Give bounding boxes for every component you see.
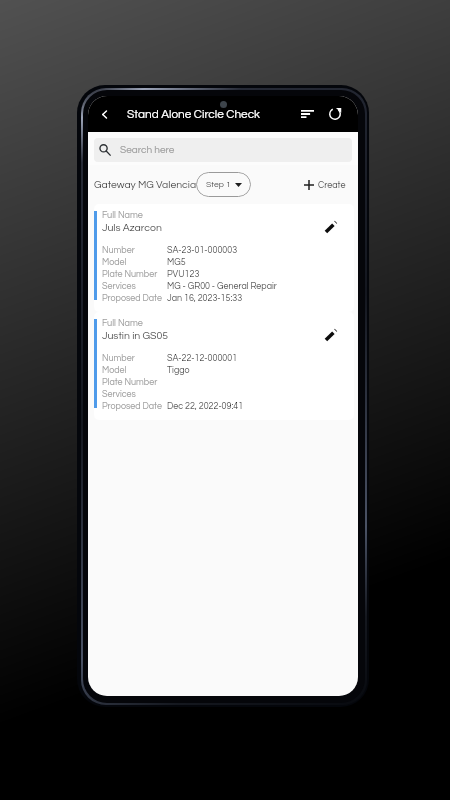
- staticText: Full Name: [102, 211, 143, 220]
- staticText: Tiggo: [167, 366, 190, 375]
- staticText: MG5: [167, 258, 186, 267]
- staticText: Search here: [120, 145, 175, 155]
- staticText: SA-22-12-000001: [167, 354, 238, 363]
- staticText: Plate Number: [102, 378, 158, 387]
- staticText: Full Name: [102, 319, 143, 328]
- staticText: Stand Alone Circle Check: [127, 108, 260, 120]
- staticText: Number: [102, 246, 135, 255]
- staticText: Gateway MG Valencia: [94, 179, 197, 190]
- staticText: Model: [102, 258, 127, 267]
- staticText: Create: [318, 181, 346, 190]
- staticText: MG - GR00 - General Repair: [167, 282, 277, 291]
- staticText: Justin in GS05: [102, 330, 169, 341]
- button[interactable]: Edit: [317, 214, 343, 240]
- staticText: PVU123: [167, 270, 200, 279]
- staticText: Dec 22, 2022-09:41: [167, 402, 244, 411]
- button[interactable]: Edit: [317, 322, 343, 348]
- staticText: Number: [102, 354, 135, 363]
- button[interactable]: Full Name: [94, 312, 354, 420]
- staticText: Jan 16, 2023-15:33: [167, 294, 243, 303]
- button[interactable]: Refresh: [322, 101, 348, 127]
- button[interactable]: Back: [93, 103, 115, 125]
- staticText: Step 1: [206, 180, 231, 189]
- button[interactable]: Step 1: [196, 172, 251, 197]
- staticText: Proposed Date: [102, 294, 162, 303]
- staticText: Plate Number: [102, 270, 158, 279]
- button[interactable]: Full Name: [94, 204, 354, 312]
- staticText: Services: [102, 282, 136, 291]
- button[interactable]: Sort: [294, 101, 320, 127]
- staticText: Model: [102, 366, 127, 375]
- button[interactable]: Create: [299, 175, 351, 195]
- staticText: Juls Azarcon: [102, 222, 162, 233]
- button[interactable]: Search here: [94, 138, 352, 162]
- staticText: Services: [102, 390, 136, 399]
- staticText: SA-23-01-000003: [167, 246, 238, 255]
- staticText: Proposed Date: [102, 402, 162, 411]
